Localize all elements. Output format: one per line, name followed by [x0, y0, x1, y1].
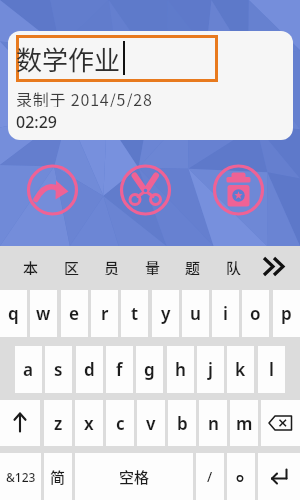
- staticText: s: [54, 358, 63, 381]
- staticText: g: [144, 358, 155, 381]
- staticText: f: [116, 358, 123, 381]
- staticText: o: [250, 302, 261, 325]
- staticText: v: [146, 412, 156, 435]
- staticText: m: [236, 412, 253, 435]
- staticText: /: [207, 468, 213, 486]
- staticText: 数学作业: [16, 40, 121, 78]
- staticText: &123: [6, 469, 36, 485]
- staticText: l: [269, 358, 274, 381]
- staticText: y: [161, 302, 171, 325]
- staticText: n: [208, 412, 219, 435]
- staticText: 量: [145, 257, 161, 275]
- staticText: j: [208, 358, 213, 381]
- staticText: w: [36, 302, 51, 325]
- staticText: p: [281, 302, 292, 325]
- staticText: 02:29: [16, 111, 57, 131]
- staticText: z: [54, 412, 63, 435]
- staticText: h: [175, 358, 186, 381]
- staticText: 区: [64, 257, 80, 275]
- staticText: 题: [185, 257, 201, 275]
- staticText: r: [101, 302, 109, 325]
- staticText: u: [190, 302, 201, 325]
- staticText: i: [223, 302, 228, 325]
- staticText: 员: [104, 257, 120, 275]
- staticText: 本: [23, 257, 39, 275]
- staticText: 空格: [119, 466, 150, 488]
- staticText: d: [84, 358, 95, 381]
- staticText: b: [177, 412, 188, 435]
- staticText: 录制于 2014/5/28: [16, 87, 153, 107]
- staticText: 队: [226, 257, 242, 275]
- staticText: x: [84, 412, 94, 435]
- staticText: k: [235, 358, 246, 381]
- staticText: e: [69, 302, 80, 325]
- staticText: c: [116, 412, 125, 435]
- staticText: q: [8, 302, 19, 325]
- staticText: a: [23, 358, 34, 381]
- staticText: t: [131, 302, 139, 325]
- staticText: 简: [50, 466, 66, 488]
